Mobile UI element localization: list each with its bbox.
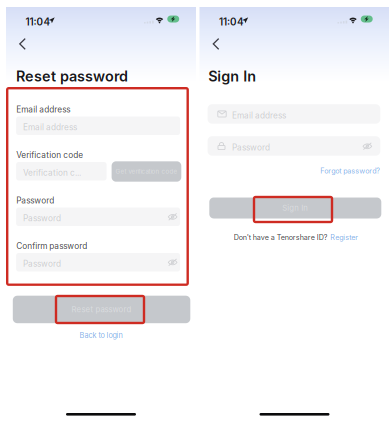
button[interactable]: Back to login — [79, 331, 122, 340]
staticText: 11:04 — [219, 16, 244, 28]
button[interactable]: Show password — [168, 258, 177, 266]
staticText: Email address — [232, 111, 286, 121]
button[interactable]: Sign In — [209, 197, 381, 218]
button[interactable]: Register — [330, 233, 358, 242]
staticText: 11:04 — [25, 16, 50, 28]
staticText: Confirm password — [16, 241, 87, 251]
staticText: Back to login — [79, 331, 122, 340]
staticText: Verification code — [16, 150, 83, 160]
button[interactable]: Back — [14, 33, 38, 55]
staticText: Register — [330, 233, 358, 242]
staticText: Email address — [16, 104, 70, 114]
button[interactable]: Reset password — [13, 296, 190, 323]
button[interactable]: Back — [207, 33, 231, 55]
staticText: Reset password — [71, 305, 131, 314]
button[interactable]: Forgot password? — [320, 166, 380, 175]
staticText: Sign In — [208, 67, 256, 85]
button[interactable]: Show password — [168, 213, 177, 221]
staticText: Password — [23, 213, 61, 223]
staticText: Password — [232, 143, 270, 153]
staticText: Reset password — [16, 67, 128, 85]
staticText: Verification c... — [23, 168, 81, 178]
staticText: Password — [16, 195, 54, 205]
button[interactable]: Show password — [363, 142, 372, 150]
staticText: Email address — [23, 122, 77, 132]
staticText: Password — [23, 259, 61, 269]
staticText: Get verification code — [115, 168, 177, 175]
staticText: Don't have a Tenorshare ID? — [234, 233, 328, 242]
staticText: Forgot password? — [320, 166, 380, 175]
staticText: Sign In — [282, 203, 308, 213]
button[interactable]: Get verification code — [112, 161, 181, 182]
